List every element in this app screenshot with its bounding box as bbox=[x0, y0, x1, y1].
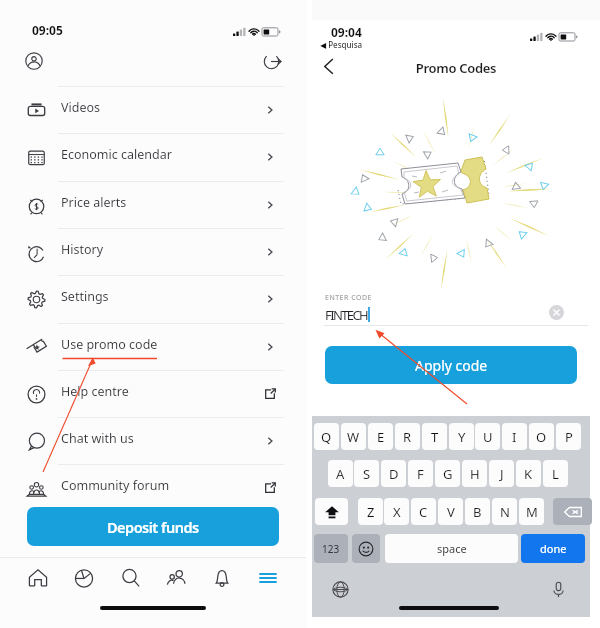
staticText: Deposit funds bbox=[107, 517, 199, 537]
button[interactable]: N bbox=[492, 498, 517, 525]
button[interactable]: P bbox=[556, 423, 581, 450]
staticText: R bbox=[403, 428, 412, 446]
staticText: Z bbox=[367, 503, 375, 521]
button[interactable]: Community forum bbox=[0, 464, 306, 512]
staticText: A bbox=[336, 465, 345, 483]
staticText: space bbox=[437, 541, 467, 556]
button[interactable]: M bbox=[519, 498, 544, 525]
button[interactable]: E bbox=[368, 423, 393, 450]
button[interactable]: Price alerts bbox=[0, 181, 306, 229]
staticText: D bbox=[389, 465, 399, 483]
staticText: W bbox=[347, 428, 360, 446]
button[interactable]: T bbox=[422, 423, 447, 450]
button[interactable]: Apply code bbox=[325, 346, 577, 384]
staticText: X bbox=[393, 503, 401, 521]
button[interactable]: S bbox=[354, 460, 379, 487]
staticText: M bbox=[526, 503, 538, 521]
button[interactable]: J bbox=[489, 460, 514, 487]
button[interactable]: Log out bbox=[263, 53, 280, 70]
button[interactable]: F bbox=[408, 460, 433, 487]
button[interactable]: Help centre bbox=[0, 370, 306, 418]
staticText: O bbox=[536, 428, 547, 446]
button[interactable]: Use promo code bbox=[0, 323, 306, 371]
staticText: Promo Codes bbox=[312, 59, 600, 77]
button[interactable]: L bbox=[543, 460, 568, 487]
button[interactable]: Clear text bbox=[549, 305, 564, 320]
button[interactable]: Videos bbox=[0, 86, 306, 134]
staticText: Price alerts bbox=[61, 194, 127, 211]
button[interactable]: Chat with us bbox=[0, 417, 306, 465]
staticText: J bbox=[500, 465, 504, 483]
staticText: C bbox=[419, 503, 428, 521]
staticText: Settings bbox=[61, 288, 109, 305]
staticText: Videos bbox=[61, 99, 101, 116]
staticText: G bbox=[443, 465, 453, 483]
button[interactable]: Change keyboard bbox=[331, 580, 350, 599]
staticText: ◀ Pesquisa bbox=[320, 39, 363, 50]
staticText: Q bbox=[321, 428, 332, 446]
button[interactable]: Profile bbox=[25, 52, 43, 70]
staticText: 123 bbox=[322, 542, 340, 556]
button[interactable]: Z bbox=[358, 498, 383, 525]
button[interactable]: Dictate bbox=[549, 580, 568, 599]
button[interactable]: I bbox=[502, 423, 527, 450]
button[interactable]: Menu bbox=[257, 567, 279, 589]
button[interactable]: done bbox=[521, 534, 585, 563]
button[interactable] bbox=[315, 498, 348, 525]
staticText: done bbox=[540, 541, 567, 556]
button[interactable]: Portfolio bbox=[73, 567, 95, 589]
staticText: ENTER CODE bbox=[325, 293, 372, 303]
button[interactable]: 123 bbox=[314, 534, 348, 563]
button[interactable] bbox=[553, 498, 592, 525]
button[interactable]: History bbox=[0, 228, 306, 276]
staticText: K bbox=[524, 465, 533, 483]
button[interactable]: Settings bbox=[0, 275, 306, 323]
staticText: History bbox=[61, 241, 104, 258]
button[interactable]: Social bbox=[166, 567, 188, 589]
button[interactable]: Notifications bbox=[211, 567, 233, 589]
staticText: N bbox=[500, 503, 510, 521]
button[interactable]: W bbox=[341, 423, 366, 450]
button[interactable]: Back bbox=[318, 54, 342, 78]
staticText: FINTECH bbox=[325, 306, 368, 324]
staticText: H bbox=[470, 465, 480, 483]
button[interactable]: Economic calendar bbox=[0, 133, 306, 181]
button[interactable]: C bbox=[411, 498, 436, 525]
button[interactable]: space bbox=[385, 534, 518, 563]
staticText: I bbox=[512, 428, 517, 446]
staticText: Help centre bbox=[61, 383, 129, 400]
button[interactable]: R bbox=[395, 423, 420, 450]
staticText: P bbox=[565, 428, 573, 446]
staticText: S bbox=[363, 465, 371, 483]
button[interactable]: K bbox=[516, 460, 541, 487]
button[interactable]: X bbox=[384, 498, 409, 525]
staticText: Economic calendar bbox=[61, 146, 172, 163]
staticText: F bbox=[417, 465, 424, 483]
staticText: Community forum bbox=[61, 477, 170, 494]
staticText: U bbox=[483, 428, 493, 446]
button[interactable]: G bbox=[435, 460, 460, 487]
staticText: 09:05 bbox=[32, 22, 63, 38]
staticText: Apply code bbox=[415, 356, 488, 375]
staticText: 09:04 bbox=[331, 24, 362, 40]
staticText: E bbox=[377, 428, 385, 446]
staticText: Chat with us bbox=[61, 430, 134, 447]
button[interactable]: H bbox=[462, 460, 487, 487]
button[interactable]: V bbox=[438, 498, 463, 525]
button[interactable]: Search bbox=[120, 567, 142, 589]
button[interactable]: Q bbox=[314, 423, 339, 450]
button[interactable]: U bbox=[475, 423, 500, 450]
staticText: V bbox=[447, 503, 455, 521]
staticText: L bbox=[552, 465, 559, 483]
staticText: B bbox=[473, 503, 482, 521]
button[interactable]: D bbox=[381, 460, 406, 487]
button[interactable] bbox=[352, 534, 380, 563]
button[interactable]: B bbox=[465, 498, 490, 525]
staticText: T bbox=[431, 428, 439, 446]
button[interactable]: Home bbox=[27, 567, 49, 589]
button[interactable]: Deposit funds bbox=[27, 507, 279, 546]
button[interactable]: A bbox=[328, 460, 353, 487]
staticText: Use promo code bbox=[61, 336, 158, 353]
button[interactable]: O bbox=[529, 423, 554, 450]
button[interactable]: Y bbox=[449, 423, 474, 450]
